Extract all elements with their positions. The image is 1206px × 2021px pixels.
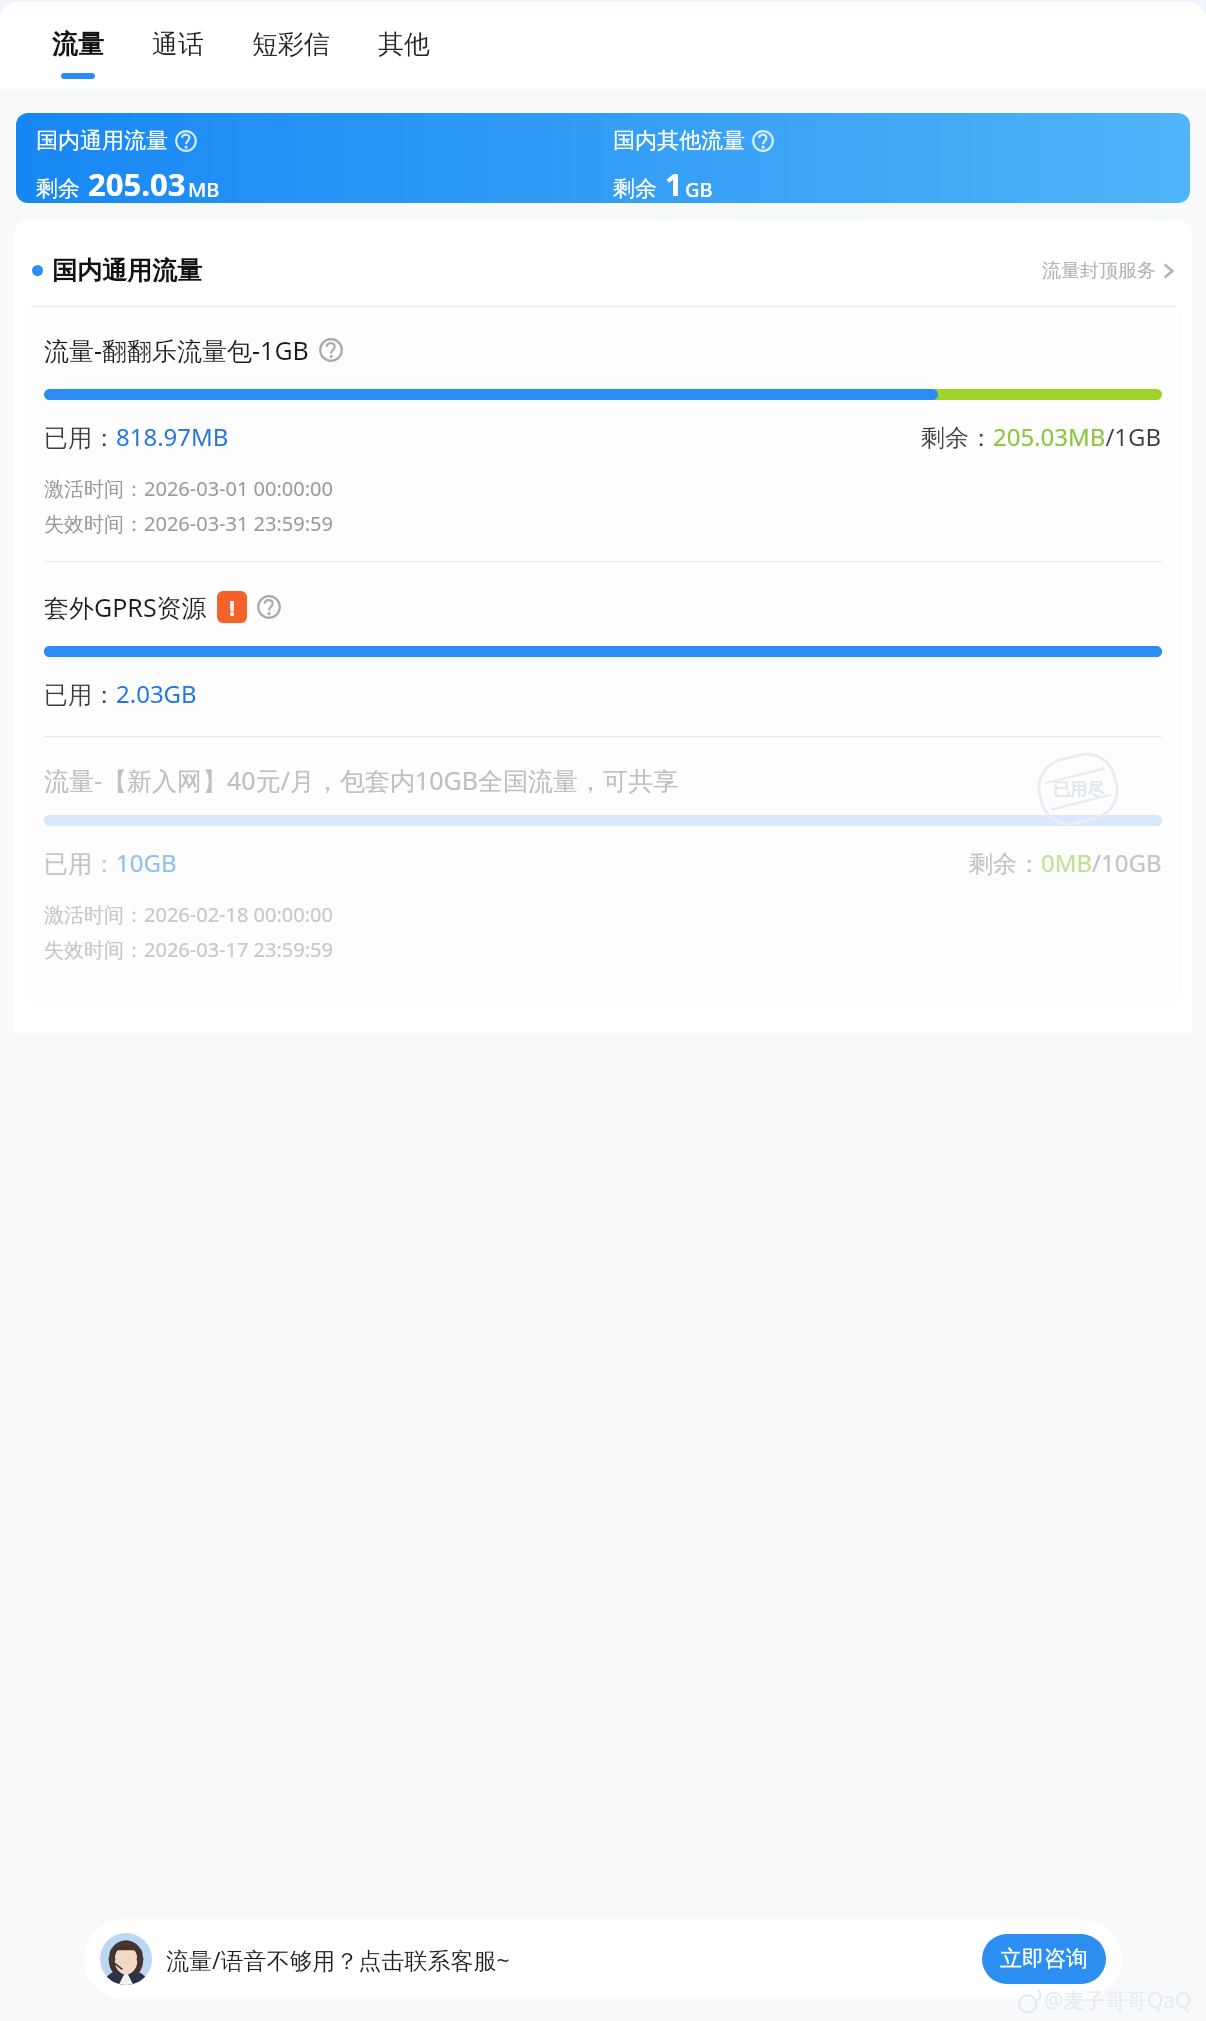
- staticText: 短彩信: [252, 28, 330, 61]
- staticText: 剩余: [613, 175, 657, 203]
- staticText: !: [229, 592, 236, 622]
- button[interactable]: 说明: [752, 130, 774, 152]
- staticText: 1: [665, 163, 683, 203]
- staticText: 套外GPRS资源: [44, 590, 207, 624]
- staticText: 剩余：0MB/10GB: [969, 846, 1162, 879]
- staticText: 流量: [52, 28, 104, 61]
- button[interactable]: 流量-翻翻乐流量包-1GB: [44, 307, 1162, 561]
- staticText: 通话: [152, 28, 204, 61]
- staticText: 其他: [378, 28, 430, 61]
- staticText: MB: [188, 176, 220, 203]
- staticText: 已用：2.03GB: [44, 677, 197, 710]
- button[interactable]: 套外GPRS资源: [44, 562, 1162, 736]
- button[interactable]: 帮助: [257, 595, 281, 619]
- button[interactable]: 流量/语音不够用？点击联系客服~: [84, 1919, 1122, 1999]
- staticText: @麦子哥哥QaQ: [1044, 1986, 1192, 2015]
- staticText: 国内其他流量: [613, 127, 745, 155]
- staticText: 剩余：205.03MB/1GB: [921, 420, 1162, 453]
- button[interactable]: 其他: [364, 28, 444, 79]
- staticText: 激活时间：2026-02-18 00:00:00: [44, 901, 333, 928]
- button[interactable]: 说明: [175, 130, 197, 152]
- staticText: 立即咨询: [1000, 1945, 1088, 1973]
- staticText: 已用：10GB: [44, 846, 177, 879]
- staticText: 失效时间：2026-03-31 23:59:59: [44, 510, 333, 537]
- staticText: 已用：818.97MB: [44, 420, 229, 453]
- staticText: 流量封顶服务: [1042, 259, 1156, 283]
- staticText: 失效时间：2026-03-17 23:59:59: [44, 936, 333, 963]
- staticText: 国内通用流量: [52, 255, 202, 286]
- staticText: 已用尽: [1053, 779, 1104, 800]
- button[interactable]: 流量-【新入网】40元/月，包套内10GB全国流量，可共享: [44, 737, 1162, 1003]
- button[interactable]: 国内通用流量: [16, 113, 1190, 203]
- staticText: 激活时间：2026-03-01 00:00:00: [44, 475, 333, 502]
- staticText: 国内通用流量: [36, 127, 168, 155]
- staticText: GB: [685, 176, 713, 203]
- staticText: 流量/语音不够用？点击联系客服~: [166, 1944, 974, 1975]
- staticText: 剩余: [36, 175, 80, 203]
- button[interactable]: 流量: [38, 28, 118, 79]
- button[interactable]: 立即咨询: [982, 1934, 1106, 1984]
- button[interactable]: 帮助: [319, 338, 343, 362]
- staticText: 流量-翻翻乐流量包-1GB: [44, 333, 309, 367]
- staticText: 流量-【新入网】40元/月，包套内10GB全国流量，可共享: [44, 763, 685, 797]
- button[interactable]: 通话: [138, 28, 218, 79]
- button[interactable]: 国内通用流量: [32, 255, 1174, 286]
- button[interactable]: 短彩信: [238, 28, 344, 79]
- staticText: 205.03: [88, 163, 186, 203]
